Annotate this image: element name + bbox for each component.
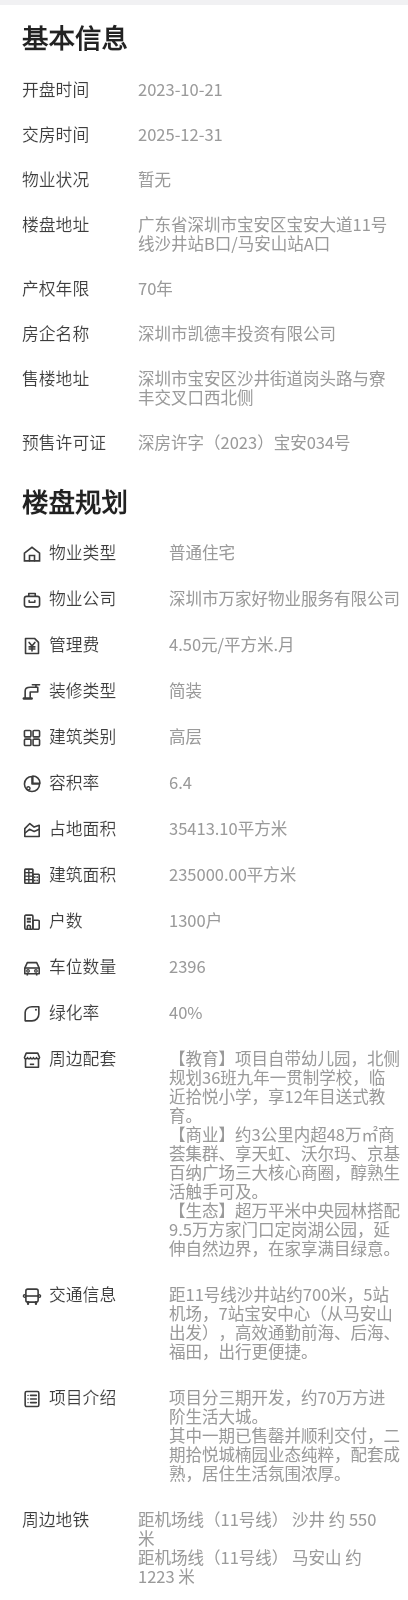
button[interactable]: 售楼地址: [0, 357, 408, 421]
button[interactable]: 交房时间: [0, 113, 408, 158]
staticText: 占地面积: [49, 820, 169, 839]
staticText: 项目分三期开发，约70万方进阶生活大城。 其中一期已售罄并顺利交付，二期拾悦城楠…: [169, 1389, 400, 1484]
button[interactable]: 户数: [0, 899, 408, 945]
staticText: 暂无: [138, 171, 171, 190]
button[interactable]: 管理费: [0, 623, 408, 669]
button[interactable]: 绿化率: [0, 991, 408, 1037]
staticText: 容积率: [49, 774, 169, 793]
staticText: 深圳市万家好物业服务有限公司: [169, 590, 400, 609]
staticText: 基本信息: [22, 17, 128, 55]
staticText: 建筑面积: [49, 866, 169, 885]
staticText: 物业状况: [22, 171, 138, 190]
staticText: 6.4: [169, 774, 192, 793]
staticText: 装修类型: [49, 682, 169, 701]
staticText: 绿化率: [49, 1004, 169, 1023]
button[interactable]: 预售许可证: [0, 421, 408, 466]
button[interactable]: 建筑类别: [0, 715, 408, 761]
staticText: 项目介绍: [49, 1389, 169, 1408]
staticText: 管理费: [49, 636, 169, 655]
staticText: 【教育】项目自带幼儿园，北侧规划36班九年一贯制学校，临近拾悦小学，享12年目送…: [169, 1050, 400, 1259]
staticText: 户数: [49, 912, 169, 931]
staticText: 距11号线沙井站约700米，5站机场，7站宝安中心（从马安山出发），高效通勤前海…: [169, 1286, 400, 1362]
staticText: 产权年限: [22, 280, 138, 299]
button[interactable]: 车位数量: [0, 945, 408, 991]
button[interactable]: 项目介绍: [0, 1376, 408, 1498]
button[interactable]: 周边配套: [0, 1037, 408, 1273]
staticText: 70年: [138, 280, 173, 299]
staticText: 普通住宅: [169, 544, 235, 563]
button[interactable]: 物业类型: [0, 531, 408, 577]
staticText: 2025-12-31: [138, 126, 223, 145]
staticText: 深房许字（2023）宝安034号: [138, 434, 351, 453]
button[interactable]: 物业状况: [0, 158, 408, 203]
staticText: 物业公司: [49, 590, 169, 609]
staticText: 开盘时间: [22, 81, 138, 100]
button[interactable]: 产权年限: [0, 267, 408, 312]
staticText: 交通信息: [49, 1286, 169, 1305]
staticText: 建筑类别: [49, 728, 169, 747]
staticText: 2396: [169, 958, 206, 977]
staticText: 售楼地址: [22, 370, 138, 389]
staticText: 交房时间: [22, 126, 138, 145]
button[interactable]: 房企名称: [0, 312, 408, 357]
button[interactable]: 物业公司: [0, 577, 408, 623]
button[interactable]: 开盘时间: [0, 68, 408, 113]
staticText: 物业类型: [49, 544, 169, 563]
staticText: 广东省深圳市宝安区宝安大道11号线沙井站B口/马安山站A口: [138, 216, 396, 254]
staticText: 周边配套: [49, 1050, 169, 1069]
staticText: 235000.00平方米: [169, 866, 297, 885]
staticText: 周边地铁: [22, 1511, 138, 1530]
staticText: 深圳市凯德丰投资有限公司: [138, 325, 336, 344]
button[interactable]: 楼盘地址: [0, 203, 408, 267]
staticText: 简装: [169, 682, 202, 701]
button[interactable]: 周边地铁: [0, 1498, 408, 1600]
staticText: 2023-10-21: [138, 81, 223, 100]
button[interactable]: 占地面积: [0, 807, 408, 853]
button[interactable]: 建筑面积: [0, 853, 408, 899]
staticText: 预售许可证: [22, 434, 138, 453]
staticText: 楼盘地址: [22, 216, 138, 235]
button[interactable]: 容积率: [0, 761, 408, 807]
staticText: 楼盘规划: [22, 481, 128, 519]
staticText: 高层: [169, 728, 202, 747]
staticText: 深圳市宝安区沙井街道岗头路与寮丰交叉口西北侧: [138, 370, 396, 408]
staticText: 车位数量: [49, 958, 169, 977]
button[interactable]: 交通信息: [0, 1273, 408, 1376]
staticText: 距机场线（11号线） 沙井 约 550 米 距机场线（11号线） 马安山 约 1…: [138, 1511, 396, 1587]
button[interactable]: 装修类型: [0, 669, 408, 715]
staticText: 4.50元/平方米.月: [169, 636, 295, 655]
staticText: 35413.10平方米: [169, 820, 288, 839]
staticText: 1300户: [169, 912, 223, 931]
staticText: 房企名称: [22, 325, 138, 344]
staticText: 40%: [169, 1004, 203, 1023]
